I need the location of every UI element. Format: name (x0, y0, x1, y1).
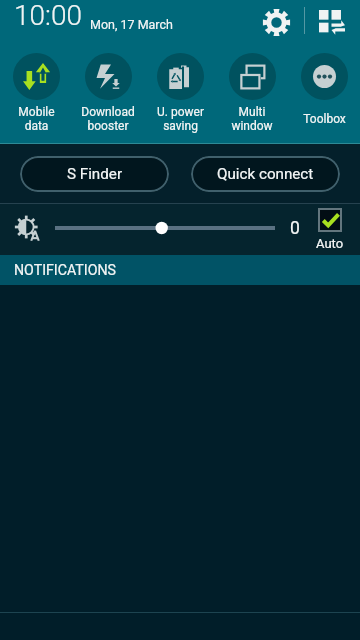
staticText: Download booster (81, 105, 135, 133)
button[interactable]: Settings (259, 5, 293, 39)
button[interactable]: Multi window (216, 53, 288, 134)
button[interactable]: S Finder (20, 156, 169, 192)
button[interactable]: Mobile data (0, 53, 72, 134)
staticText: Quick connect (217, 165, 314, 183)
staticText: Mobile data (18, 105, 55, 133)
staticText: Toolbox (303, 112, 346, 126)
button[interactable]: Auto brightness (15, 216, 40, 241)
button[interactable]: Toolbox (288, 53, 360, 134)
staticText: Mon, 17 March (90, 17, 173, 32)
button[interactable]: Quick connect (191, 156, 340, 192)
button[interactable]: NOTIFICATIONS (0, 255, 360, 285)
button[interactable]: Auto (310, 208, 350, 251)
staticText: S Finder (67, 165, 123, 183)
staticText: 10:00 (14, 0, 83, 32)
button[interactable]: Edit quick settings (315, 4, 349, 38)
staticText: 0 (290, 218, 300, 239)
staticText: Multi window (231, 105, 273, 133)
staticText: U. power saving (157, 105, 204, 133)
staticText: NOTIFICATIONS (14, 262, 116, 279)
button[interactable]: Download booster (72, 53, 144, 134)
button[interactable]: U. power saving (144, 53, 216, 134)
button[interactable]: Brightness slider (50, 218, 280, 238)
staticText: Auto (316, 236, 344, 251)
